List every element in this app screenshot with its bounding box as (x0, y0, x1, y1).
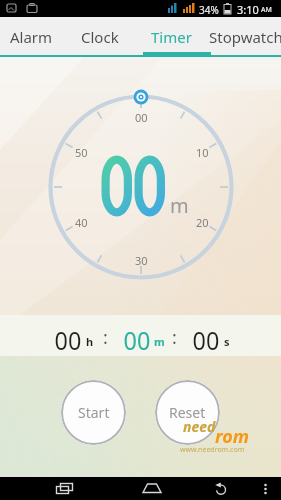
staticText: 40 (75, 215, 88, 230)
staticText: 00 (54, 322, 81, 357)
staticText: rom (215, 424, 250, 449)
staticText: : (103, 325, 108, 350)
staticText: 00 (135, 110, 148, 125)
staticText: Stopwatch (209, 27, 281, 47)
staticText: 3:10 (237, 2, 259, 17)
staticText: Start (78, 403, 110, 422)
staticText: Alarm (10, 27, 53, 47)
staticText: s (224, 334, 230, 349)
staticText: 34% (199, 3, 219, 17)
staticText: 50 (75, 145, 88, 160)
staticText: 00 (192, 322, 219, 357)
staticText: Clock (81, 27, 119, 47)
staticText: Reset (169, 403, 206, 422)
staticText: AM (261, 5, 272, 15)
staticText: h (86, 334, 94, 349)
staticText: 00 (123, 322, 150, 357)
staticText: 10 (196, 145, 209, 160)
staticText: Timer (151, 27, 192, 47)
staticText: : (172, 325, 177, 350)
staticText: 20 (196, 215, 209, 230)
staticText: m (154, 334, 165, 349)
staticText: m (170, 192, 189, 219)
staticText: 30 (135, 253, 148, 268)
staticText: need (183, 417, 216, 436)
staticText: www.needrom.com (180, 445, 245, 455)
